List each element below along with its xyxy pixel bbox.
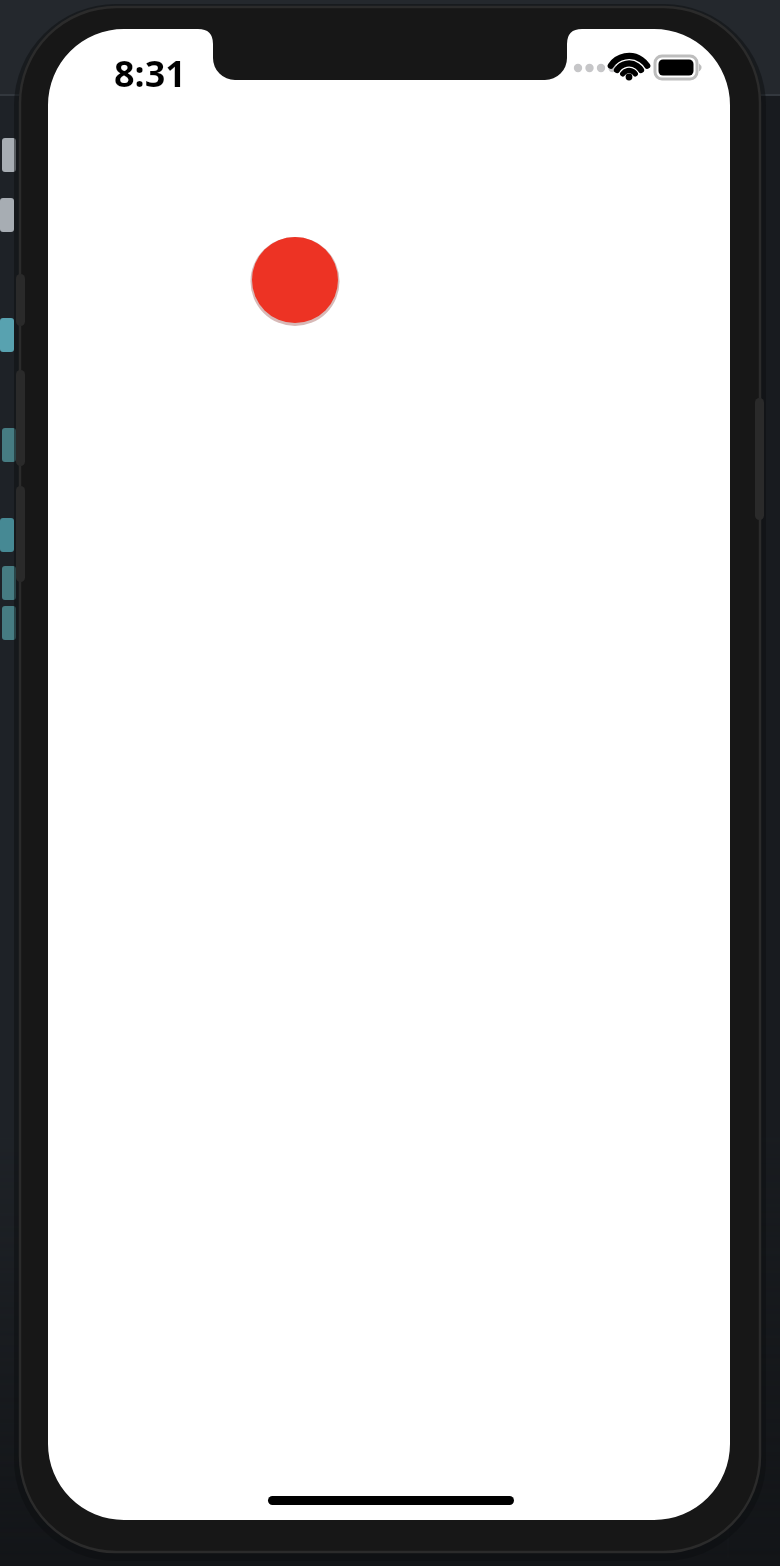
button[interactable]: Home [268,1486,514,1514]
button[interactable]: Red dot [252,237,338,323]
staticText: 8:31 [114,49,186,98]
